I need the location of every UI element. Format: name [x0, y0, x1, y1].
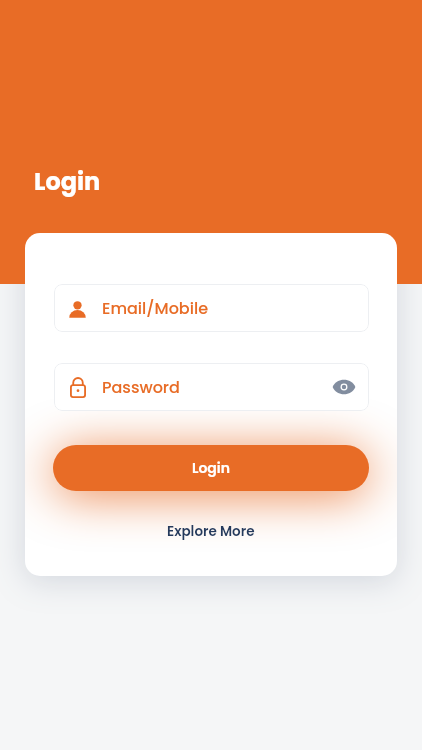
staticText: Password [102, 376, 180, 398]
staticText: Explore More [167, 522, 255, 541]
button[interactable]: Login [53, 445, 369, 491]
button[interactable]: Email/Mobile [54, 284, 369, 332]
button[interactable]: Explore More [159, 518, 263, 545]
button[interactable]: Password [54, 363, 369, 411]
staticText: Login [34, 165, 101, 199]
staticText: Login [192, 458, 230, 478]
button[interactable]: Show password [332, 376, 356, 398]
staticText: Email/Mobile [102, 297, 209, 319]
